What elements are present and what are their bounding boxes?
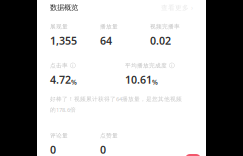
staticText: 数据概览: [50, 3, 78, 12]
button[interactable]: Promote: [185, 154, 201, 156]
staticText: 好棒了！视频累计获得了64播放量，是您其他视频: [50, 95, 182, 103]
staticText: 点赞量: [100, 132, 118, 139]
staticText: 的178.6倍: [50, 106, 76, 114]
staticText: 播放量: [100, 23, 118, 30]
staticText: 评论量: [50, 132, 68, 139]
staticText: 展现量: [50, 23, 68, 30]
staticText: 4.72: [50, 72, 71, 87]
staticText: 10.61: [125, 72, 152, 87]
staticText: 视频完播率: [150, 23, 180, 30]
staticText: 查看更多 ›: [161, 3, 193, 12]
staticText: 64: [100, 33, 112, 48]
staticText: 0: [100, 142, 106, 156]
staticText: %: [71, 78, 77, 87]
staticText: 0: [50, 142, 56, 156]
staticText: 0.02: [150, 33, 171, 48]
button[interactable]: 查看更多 ›: [161, 3, 193, 12]
staticText: %: [152, 78, 158, 87]
staticText: 点击率 ⓘ: [50, 62, 76, 69]
staticText: 平均播放完成度 ⓘ: [125, 62, 175, 69]
staticText: 1,355: [50, 33, 77, 48]
